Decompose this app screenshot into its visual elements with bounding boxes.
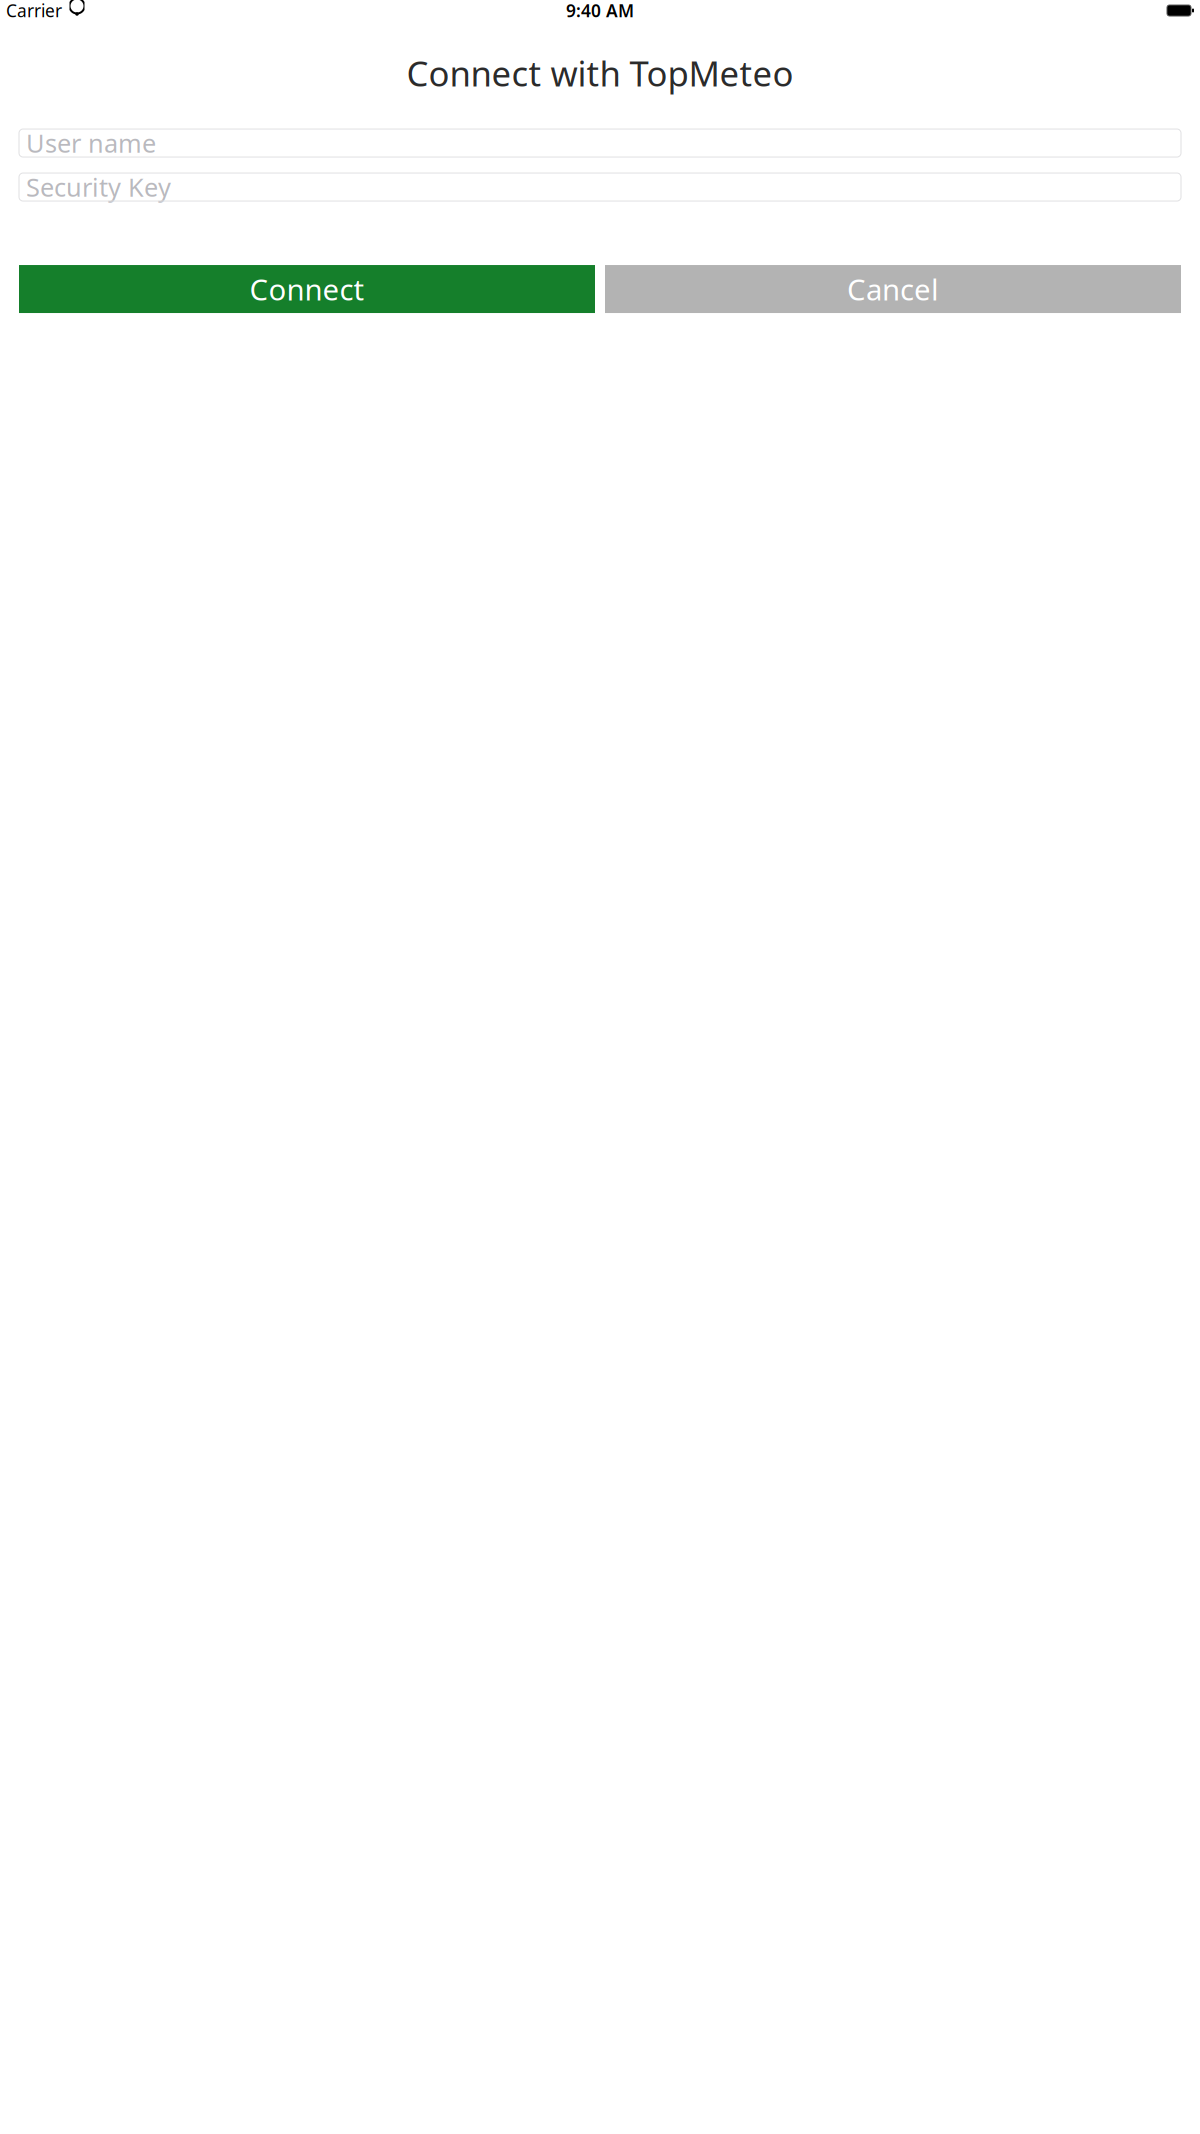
button[interactable]: Cancel	[605, 265, 1181, 313]
staticText: Cancel	[847, 270, 939, 309]
staticText: Connect	[249, 270, 364, 309]
staticText: Carrier	[6, 0, 62, 22]
button[interactable]: Connect	[19, 265, 595, 313]
staticText: Connect with TopMeteo	[406, 50, 793, 96]
staticText: 9:40 AM	[566, 0, 634, 22]
staticText: Security Key	[26, 170, 171, 204]
button[interactable]: User name	[19, 129, 1181, 157]
button[interactable]: Security Key	[19, 173, 1181, 201]
staticText: User name	[26, 126, 156, 160]
